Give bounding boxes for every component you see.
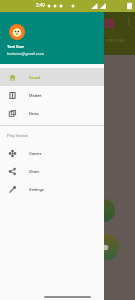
button[interactable]: Games (0, 144, 104, 162)
button[interactable]: News (0, 104, 104, 122)
staticText: Found (29, 75, 41, 80)
staticText: POPULAR (106, 38, 124, 43)
button[interactable]: More options (122, 15, 135, 28)
staticText: Share (29, 169, 40, 174)
staticText: testuser@gmail.com (7, 51, 44, 56)
staticText: Market (29, 93, 42, 98)
staticText: Test User (7, 44, 25, 49)
button[interactable]: Found (0, 68, 104, 86)
staticText: Play Station (7, 133, 29, 138)
button[interactable]: Add (93, 234, 119, 260)
staticText: Games (29, 151, 42, 156)
button[interactable]: Cart (92, 199, 115, 222)
staticText: 2:49 (36, 3, 45, 8)
button[interactable]: Market (0, 86, 104, 104)
staticText: Settings (29, 187, 44, 192)
staticText: News (29, 111, 40, 116)
button[interactable]: Settings (0, 180, 104, 198)
button[interactable]: Share (0, 162, 104, 180)
